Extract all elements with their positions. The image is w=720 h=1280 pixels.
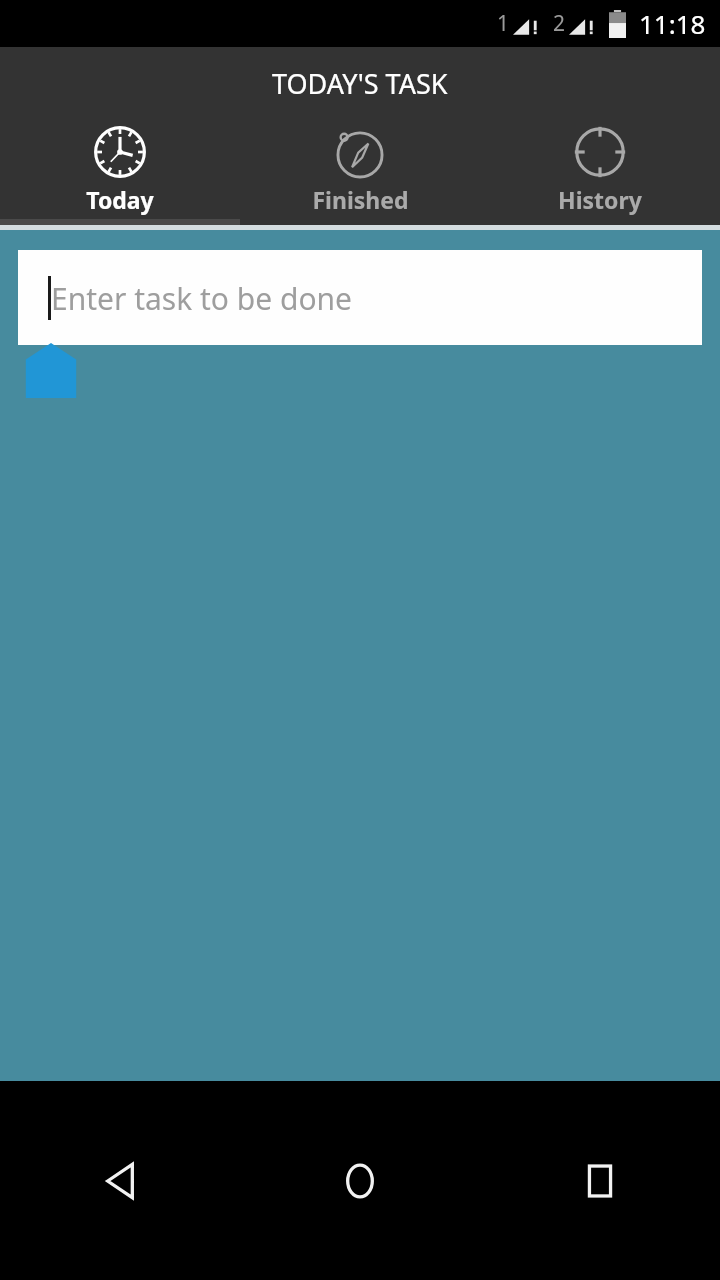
staticText: Finished — [312, 184, 409, 215]
staticText: History — [558, 184, 642, 215]
button[interactable]: Today — [0, 119, 240, 219]
button[interactable]: Recent apps — [480, 1081, 720, 1280]
button[interactable]: Finished — [240, 119, 480, 219]
button[interactable]: Home — [240, 1081, 480, 1280]
staticText: Enter task to be done — [51, 278, 353, 319]
button[interactable]: History — [480, 119, 720, 219]
button[interactable]: Enter task to be done — [18, 250, 702, 345]
staticText: Today — [86, 184, 154, 215]
staticText: 11:18 — [639, 6, 706, 41]
staticText: 2 — [553, 9, 566, 38]
button[interactable]: Back — [0, 1081, 240, 1280]
staticText: 1 — [497, 9, 510, 38]
staticText: TODAY'S TASK — [272, 65, 448, 102]
